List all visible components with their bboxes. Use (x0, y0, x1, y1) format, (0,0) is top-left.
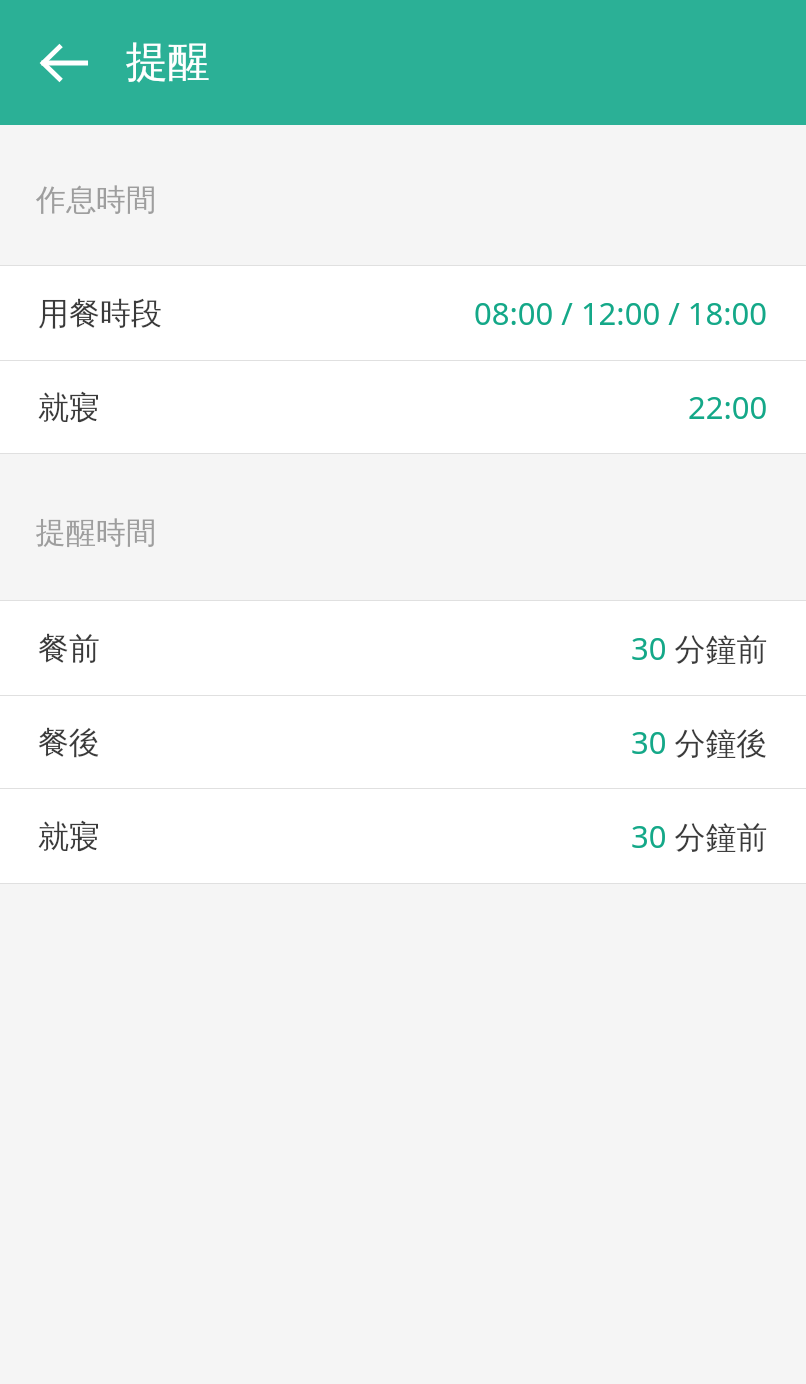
button[interactable]: 就寢 (0, 361, 806, 453)
button[interactable]: 就寢 (0, 789, 806, 883)
staticText: 作息時間 (36, 181, 156, 219)
staticText: 用餐時段 (38, 294, 162, 333)
button[interactable]: Back (41, 40, 87, 86)
staticText: 30 分鐘前 (631, 627, 768, 669)
staticText: 就寢 (38, 388, 100, 427)
staticText: 30 分鐘前 (631, 815, 768, 857)
button[interactable]: 用餐時段 (0, 266, 806, 360)
staticText: 提醒 (126, 36, 210, 89)
button[interactable]: 餐後 (0, 696, 806, 788)
staticText: 08:00 / 12:00 / 18:00 (474, 292, 768, 334)
staticText: 30 分鐘後 (631, 721, 768, 763)
staticText: 提醒時間 (36, 514, 156, 552)
staticText: 22:00 (688, 386, 768, 428)
button[interactable]: 餐前 (0, 601, 806, 695)
staticText: 就寢 (38, 817, 100, 856)
staticText: 餐前 (38, 629, 100, 668)
staticText: 餐後 (38, 723, 100, 762)
